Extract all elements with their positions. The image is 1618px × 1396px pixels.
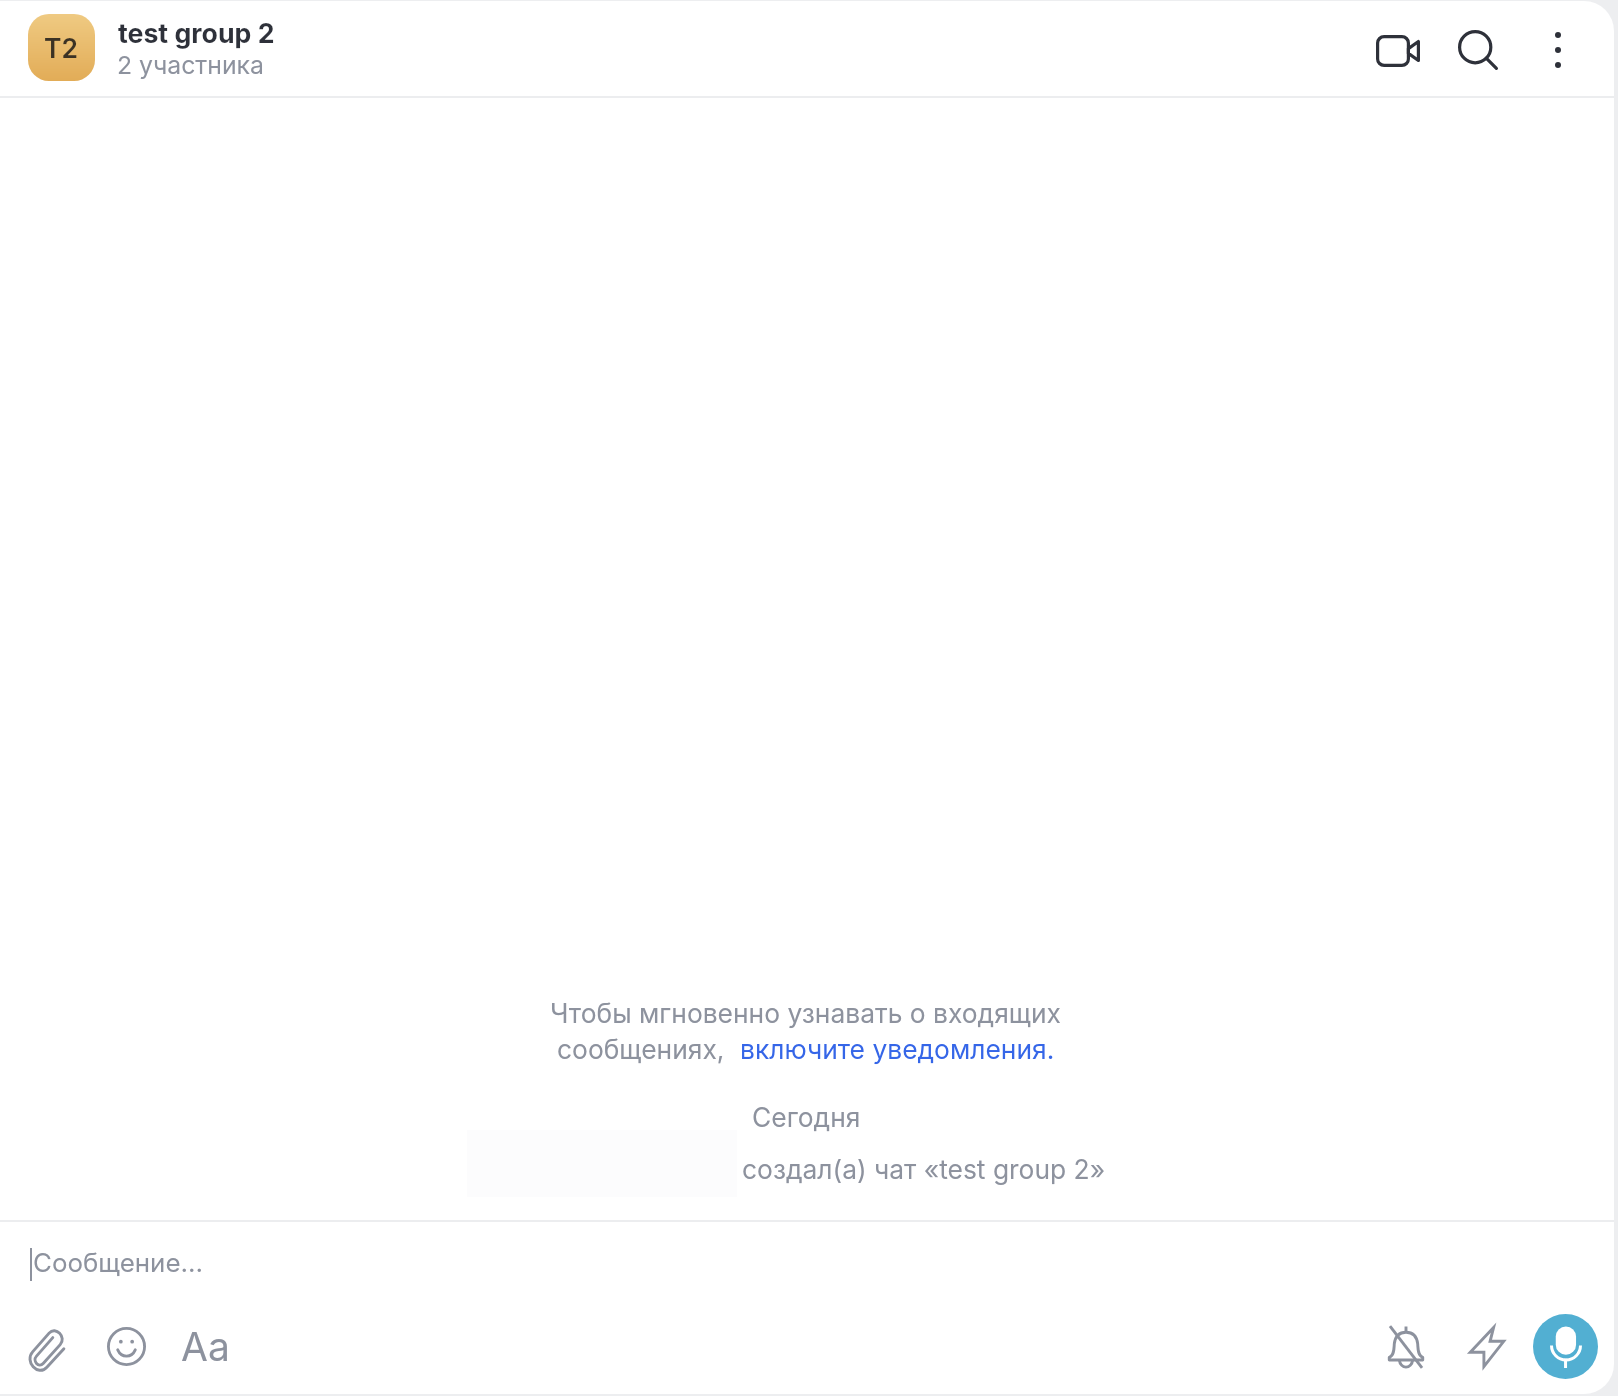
button[interactable]: T2 — [28, 14, 95, 81]
button[interactable]: Text formatting — [173, 1314, 237, 1378]
staticText: создал(а) чат «test group 2» — [742, 1153, 1106, 1185]
button[interactable]: Video call — [1362, 15, 1434, 87]
button[interactable]: Search — [1442, 14, 1514, 86]
button[interactable]: включите уведомления. — [740, 1033, 1055, 1065]
staticText: сообщениях, — [557, 1033, 740, 1065]
button[interactable]: Emoji — [94, 1314, 158, 1378]
staticText: Aa — [181, 1323, 230, 1370]
staticText: Сегодня — [752, 1101, 861, 1133]
button[interactable]: More options — [1522, 14, 1594, 86]
button[interactable]: Record voice message — [1533, 1314, 1598, 1379]
staticText: Чтобы мгновенно узнавать о входящих — [550, 997, 1061, 1029]
button[interactable]: Mute notifications — [1374, 1315, 1438, 1379]
staticText: Сообщение... — [33, 1247, 203, 1278]
staticText: 2 участника — [117, 50, 264, 80]
staticText: T2 — [44, 32, 79, 64]
staticText: test group 2 — [118, 17, 275, 49]
button[interactable]: Quick actions — [1455, 1315, 1519, 1379]
button[interactable]: Attach file — [14, 1315, 78, 1379]
